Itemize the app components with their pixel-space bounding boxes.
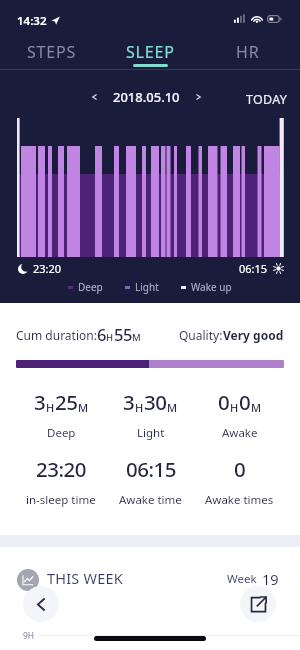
staticText: Deep [78, 280, 103, 294]
staticText: 30 [144, 388, 167, 416]
button[interactable]: Next day [188, 87, 208, 107]
button[interactable]: Light [125, 280, 159, 294]
button[interactable]: 3 [16, 388, 106, 441]
button[interactable]: TODAY [243, 86, 291, 113]
staticText: 06:15 [239, 261, 268, 276]
staticText: 9H [23, 630, 35, 642]
staticText: H [106, 331, 114, 344]
staticText: 23:20 [33, 261, 62, 276]
staticText: Quality: [179, 327, 223, 343]
staticText: 19 [262, 569, 279, 589]
staticText: 0 [218, 388, 230, 416]
staticText: 3 [123, 388, 135, 416]
staticText: 0 [239, 388, 251, 416]
button[interactable]: HR [196, 38, 300, 70]
staticText: TODAY [246, 91, 288, 108]
staticText: H [230, 400, 239, 415]
staticText: 6 [97, 323, 106, 345]
staticText: SLEEP [126, 41, 175, 63]
staticText: STEPS [27, 41, 77, 63]
button[interactable]: Back [23, 586, 59, 622]
staticText: 14:32 [17, 13, 47, 29]
button[interactable]: 23:20 [16, 455, 106, 508]
staticText: 3 [34, 388, 46, 416]
staticText: Wake up [191, 280, 232, 294]
staticText: M [132, 331, 141, 344]
button[interactable]: SLEEP [104, 38, 196, 70]
button[interactable]: 0 [195, 455, 284, 508]
staticText: THIS WEEK [47, 568, 123, 588]
staticText: Deep [47, 425, 76, 441]
button[interactable]: STEPS [0, 38, 104, 70]
button[interactable]: 0 [195, 388, 284, 441]
staticText: M [78, 400, 89, 415]
staticText: Awake time [119, 492, 182, 508]
staticText: 23:20 [36, 455, 86, 483]
staticText: HR [236, 41, 260, 63]
button[interactable]: 3 [106, 388, 195, 441]
button[interactable]: Wake up [181, 280, 232, 294]
staticText: 25 [55, 388, 78, 416]
staticText: 55 [114, 323, 132, 345]
staticText: Cum duration: [16, 327, 97, 343]
staticText: M [251, 400, 262, 415]
staticText: Light [135, 280, 159, 294]
staticText: 06:15 [126, 455, 176, 483]
staticText: Week [227, 571, 257, 587]
staticText: in-sleep time [26, 492, 96, 508]
staticText: Very good [223, 327, 284, 343]
button[interactable]: Deep [68, 280, 103, 294]
staticText: H [135, 400, 144, 415]
staticText: Awake [222, 425, 258, 441]
button[interactable]: Previous day [85, 87, 105, 107]
button[interactable]: 06:15 [106, 455, 195, 508]
staticText: M [167, 400, 178, 415]
button[interactable]: Share [240, 586, 276, 622]
staticText: Awake times [205, 492, 274, 508]
staticText: Light [137, 425, 165, 441]
staticText: 2018.05.10 [113, 88, 180, 106]
staticText: 0 [234, 455, 246, 483]
staticText: H [46, 400, 55, 415]
